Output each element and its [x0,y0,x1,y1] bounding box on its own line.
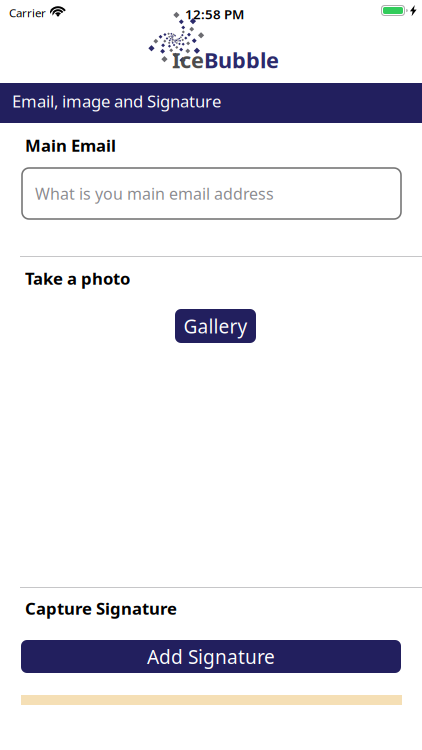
staticText: What is you main email address [35,183,274,204]
staticText: Carrier [9,5,46,21]
staticText: Ice [172,45,204,75]
staticText: Main Email [25,134,116,157]
button[interactable]: What is you main email address [22,168,401,219]
button[interactable]: Email, image and Signature [0,83,422,123]
staticText: Capture Signature [25,597,177,620]
staticText: Gallery [183,313,247,339]
staticText: Email, image and Signature [12,90,221,112]
staticText: Add Signature [147,643,275,669]
staticText: Bubble [204,45,279,75]
button[interactable]: Gallery [175,309,256,343]
staticText: 12:58 PM [185,5,244,23]
staticText: Take a photo [25,267,130,290]
button[interactable]: Add Signature [21,640,401,673]
